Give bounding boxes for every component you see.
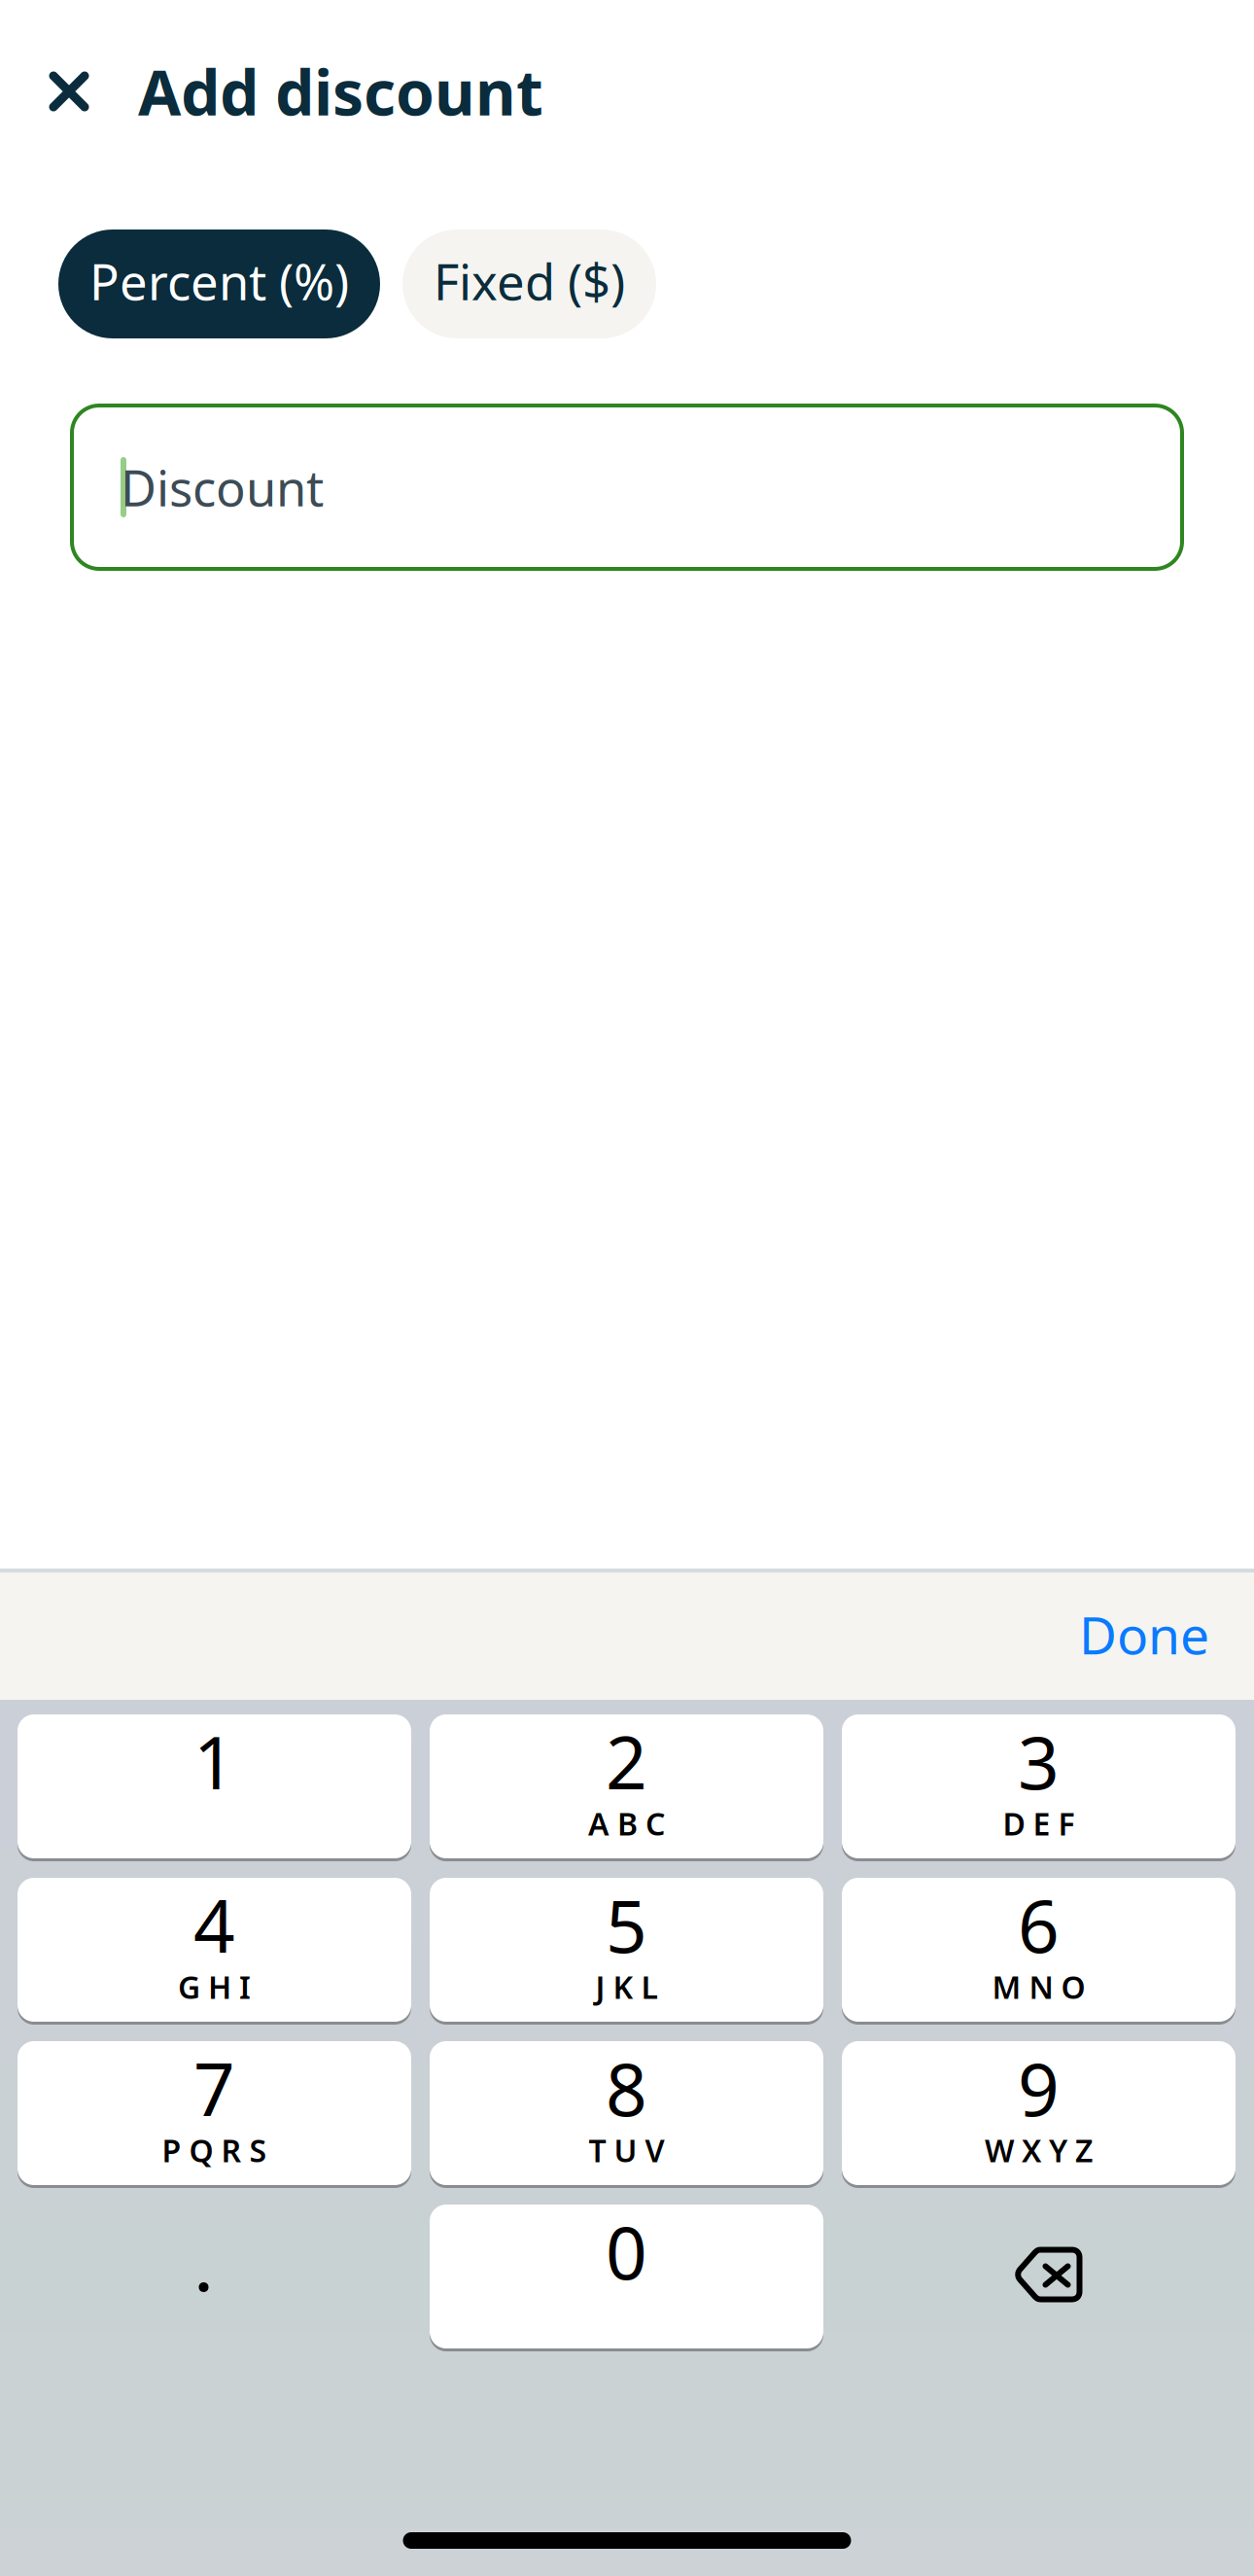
staticText: 2 <box>606 1713 647 1809</box>
button[interactable]: 4 <box>17 1878 411 2022</box>
button[interactable]: Percent (%) <box>58 229 380 338</box>
staticText: 7 <box>193 2040 235 2136</box>
button[interactable]: 5 <box>430 1878 823 2022</box>
staticText: G H I <box>178 1966 251 2007</box>
staticText: Add discount <box>138 50 543 133</box>
button[interactable]: Fixed ($) <box>402 229 656 338</box>
staticText: J K L <box>595 1966 658 2007</box>
staticText: T U V <box>589 2129 664 2171</box>
button[interactable]: 9 <box>842 2041 1236 2185</box>
button[interactable]: 8 <box>430 2041 823 2185</box>
staticText: M N O <box>992 1966 1085 2007</box>
button[interactable]: 3 <box>842 1714 1236 1858</box>
button[interactable]: Delete <box>842 2205 1236 2348</box>
staticText: Discount <box>121 455 324 520</box>
staticText: 0 <box>606 2203 647 2299</box>
staticText: 9 <box>1018 2040 1060 2136</box>
button[interactable]: 7 <box>17 2041 411 2185</box>
staticText: P Q R S <box>162 2129 267 2171</box>
button[interactable]: Decimal point <box>17 2205 411 2348</box>
button[interactable]: Done <box>1034 1584 1254 1688</box>
staticText: D E F <box>1003 1803 1075 1844</box>
staticText: 8 <box>606 2040 647 2136</box>
staticText: 3 <box>1018 1713 1060 1809</box>
button[interactable]: 2 <box>430 1714 823 1858</box>
button[interactable]: 1 <box>17 1714 411 1858</box>
staticText: Percent (%) <box>89 248 349 314</box>
staticText: 6 <box>1018 1876 1060 1973</box>
staticText: 5 <box>606 1876 647 1973</box>
staticText: Done <box>1079 1600 1209 1669</box>
button[interactable]: 6 <box>842 1878 1236 2022</box>
staticText: W X Y Z <box>985 2129 1093 2171</box>
staticText: 4 <box>193 1876 235 1973</box>
staticText: A B C <box>588 1803 665 1844</box>
button[interactable]: 0 <box>430 2205 823 2348</box>
staticText: 1 <box>193 1713 235 1809</box>
button[interactable]: Close <box>22 45 116 138</box>
staticText: Fixed ($) <box>434 248 625 314</box>
